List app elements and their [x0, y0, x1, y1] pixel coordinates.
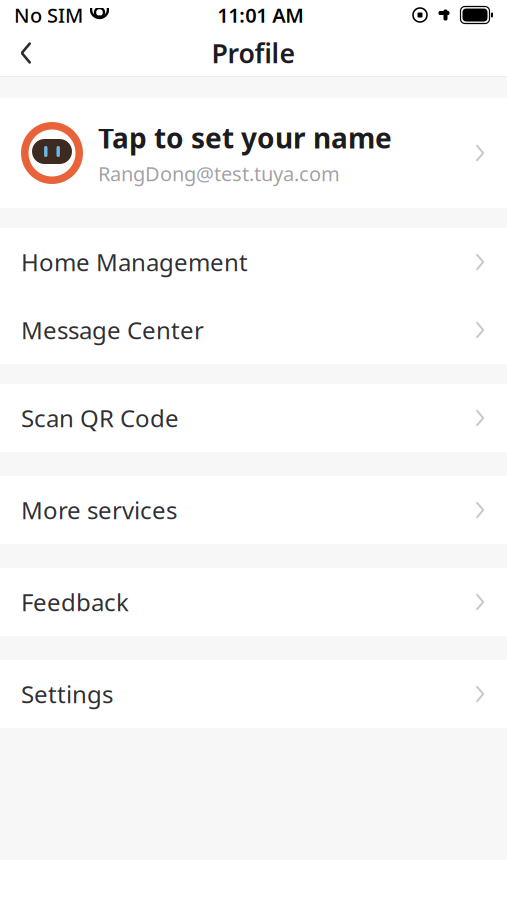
- button[interactable]: Settings: [0, 660, 507, 728]
- staticText: 11:01 AM: [217, 2, 304, 28]
- button[interactable]: Scan QR Code: [0, 384, 507, 452]
- staticText: Profile: [211, 35, 295, 71]
- staticText: Home Management: [21, 246, 248, 278]
- button[interactable]: Tap to set your name: [0, 98, 507, 208]
- staticText: No SIM: [14, 2, 83, 28]
- button[interactable]: More services: [0, 476, 507, 544]
- button[interactable]: Message Center: [0, 296, 507, 364]
- button[interactable]: Feedback: [0, 568, 507, 636]
- staticText: Tap to set your name: [98, 119, 392, 156]
- staticText: Message Center: [21, 314, 204, 346]
- staticText: Feedback: [21, 586, 129, 618]
- button[interactable]: Back: [0, 30, 52, 76]
- button[interactable]: Home Management: [0, 228, 507, 296]
- staticText: More services: [21, 494, 177, 526]
- staticText: RangDong@test.tuya.com: [98, 160, 340, 187]
- staticText: Scan QR Code: [21, 402, 179, 434]
- staticText: Settings: [21, 678, 113, 710]
